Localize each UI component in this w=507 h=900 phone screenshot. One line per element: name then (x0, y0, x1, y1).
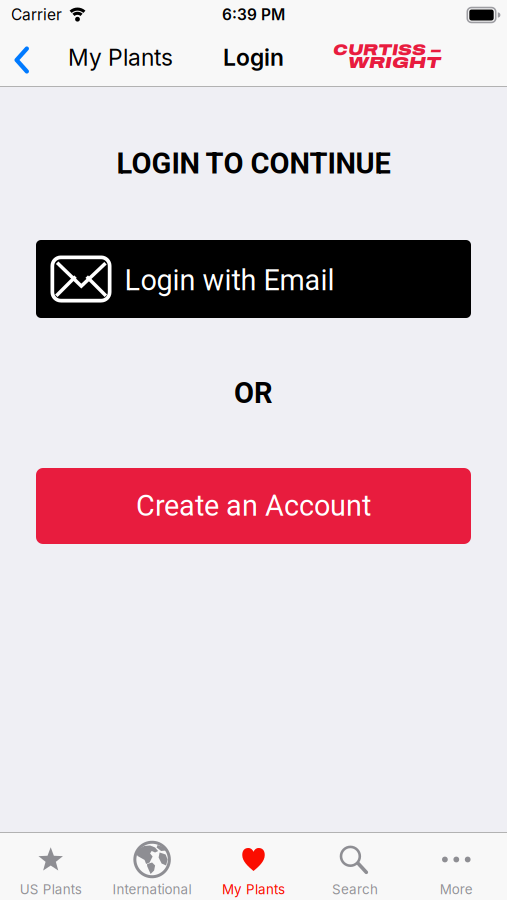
button[interactable]: My Plants (203, 833, 304, 900)
button[interactable]: Create an Account (36, 468, 471, 544)
staticText: US Plants (20, 881, 82, 898)
staticText: Login with Email (124, 264, 334, 297)
button[interactable]: Curtiss-Wright (333, 42, 507, 71)
staticText: Login (223, 44, 284, 71)
staticText: CURTISS – (333, 42, 441, 59)
staticText: Search (332, 881, 378, 898)
staticText: 6:39 PM (222, 5, 285, 24)
staticText: My Plants (68, 44, 173, 71)
button[interactable]: My Plants (0, 43, 173, 70)
staticText: OR (234, 376, 273, 410)
staticText: More (440, 881, 473, 898)
button[interactable]: Search (304, 833, 406, 900)
button[interactable]: International (101, 833, 203, 900)
staticText: LOGIN TO CONTINUE (116, 146, 390, 180)
button[interactable]: More (406, 833, 507, 900)
staticText: Create an Account (136, 489, 371, 523)
staticText: WRIGHT (348, 53, 441, 71)
button[interactable]: US Plants (0, 833, 101, 900)
staticText: Carrier (11, 5, 62, 24)
staticText: International (113, 881, 192, 898)
button[interactable]: Login with Email (36, 240, 471, 318)
staticText: My Plants (222, 881, 285, 898)
